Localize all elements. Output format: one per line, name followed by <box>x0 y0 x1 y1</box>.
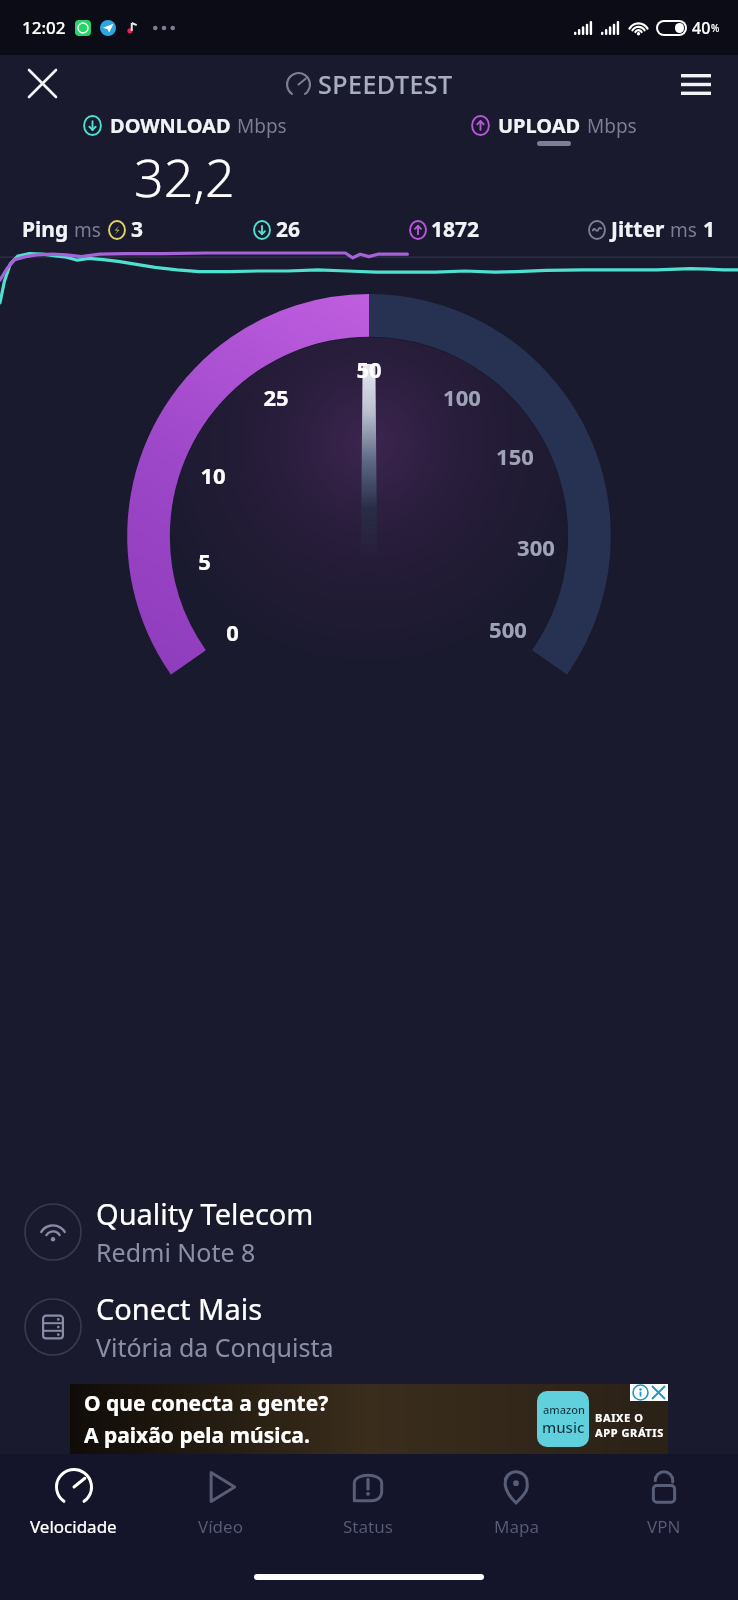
button[interactable]: Menu <box>668 56 724 112</box>
staticText: 25 <box>263 382 289 412</box>
staticText: 32,2 <box>134 141 235 211</box>
staticText: ms <box>74 217 101 243</box>
staticText: Velocidade <box>30 1515 117 1538</box>
staticText: music <box>542 1417 585 1437</box>
staticText: Vitória da Conquista <box>96 1330 334 1364</box>
staticText: Mbps <box>237 113 287 139</box>
button[interactable]: Status <box>294 1454 442 1554</box>
staticText: 26 <box>276 215 301 244</box>
staticText: 500 <box>489 614 527 644</box>
staticText: 12:02 <box>22 16 66 39</box>
button[interactable]: Vídeo <box>147 1454 294 1554</box>
button[interactable]: VPN <box>590 1454 738 1554</box>
staticText: 50 <box>356 354 382 384</box>
button[interactable]: Advertisement <box>70 1384 668 1454</box>
button[interactable]: Mapa <box>442 1454 590 1554</box>
staticText: % <box>711 21 720 35</box>
button[interactable]: Conect Mais <box>0 1289 738 1364</box>
staticText: Vídeo <box>198 1515 243 1538</box>
staticText: Quality Telecom <box>96 1194 314 1233</box>
staticText: Redmi Note 8 <box>96 1235 256 1269</box>
staticText: BAIXE O <box>595 1410 644 1425</box>
staticText: Mbps <box>587 113 637 139</box>
staticText: VPN <box>647 1515 681 1538</box>
staticText: 100 <box>443 382 481 412</box>
staticText: O que conecta a gente? <box>84 1389 329 1418</box>
staticText: Ping <box>22 215 69 244</box>
staticText: Status <box>343 1515 393 1538</box>
staticText: 150 <box>496 441 534 471</box>
staticText: A paixão pela música. <box>84 1421 310 1450</box>
staticText: 1872 <box>431 215 480 244</box>
button[interactable]: Velocidade <box>0 1454 147 1554</box>
staticText: 5 <box>198 546 211 576</box>
staticText: 0 <box>226 617 239 647</box>
staticText: Mapa <box>494 1515 539 1538</box>
staticText: 3 <box>131 215 144 244</box>
button[interactable]: Close <box>12 55 72 112</box>
staticText: DOWNLOAD <box>110 112 231 139</box>
staticText: SPEEDTEST <box>318 67 453 101</box>
staticText: Conect Mais <box>96 1289 263 1328</box>
button[interactable]: Quality Telecom <box>0 1194 738 1269</box>
staticText: APP GRÁTIS <box>595 1425 664 1440</box>
staticText: ms <box>670 217 697 243</box>
staticText: 1 <box>703 215 716 244</box>
staticText: UPLOAD <box>498 112 581 139</box>
staticText: 300 <box>517 532 555 562</box>
staticText: amazon <box>543 1402 585 1417</box>
staticText: 40 <box>692 17 711 39</box>
staticText: Jitter <box>611 215 665 244</box>
staticText: 10 <box>200 460 226 490</box>
